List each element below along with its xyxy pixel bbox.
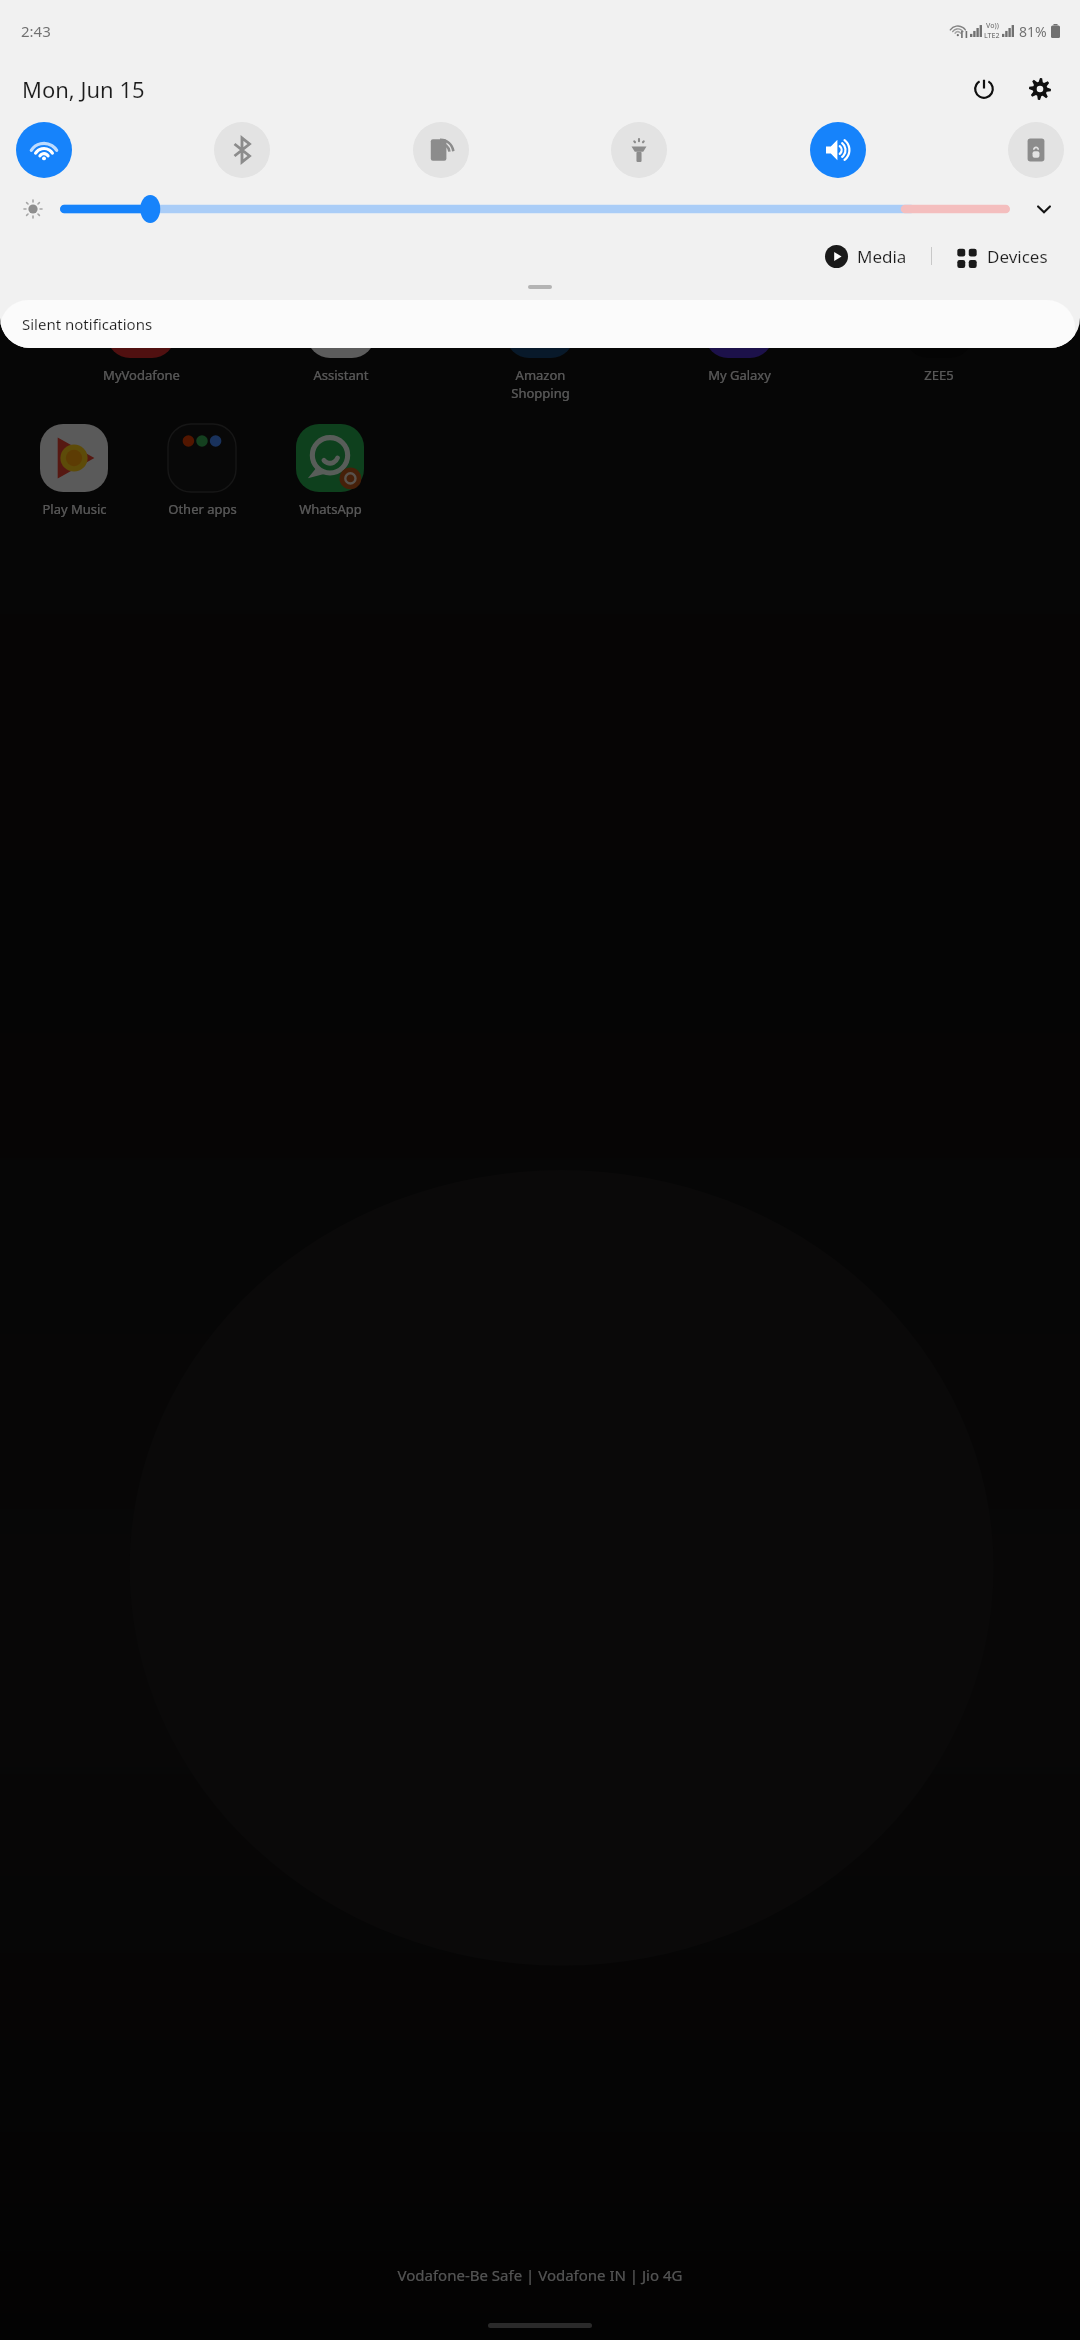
staticText: Vodafone-Be Safe | Vodafone IN | Jio 4G xyxy=(0,2265,1080,2285)
button[interactable]: Media xyxy=(819,242,913,271)
staticText: LTE2 xyxy=(984,31,1000,41)
staticText: 2:43 xyxy=(21,21,51,41)
button[interactable]: Flashlight xyxy=(611,122,667,178)
staticText: My Galaxy xyxy=(708,366,771,384)
staticText: Other apps xyxy=(168,500,237,518)
button[interactable]: Mobile data xyxy=(413,122,469,178)
staticText: Assistant xyxy=(313,366,369,384)
button[interactable]: Play Music xyxy=(10,424,138,518)
button[interactable]: Expand brightness settings xyxy=(1024,192,1064,226)
button[interactable]: Settings xyxy=(1018,67,1062,111)
staticText: Amazon Shopping xyxy=(511,366,570,402)
staticText: Vo)) xyxy=(986,21,999,31)
staticText: Silent notifications xyxy=(22,314,153,334)
staticText: Media xyxy=(857,245,907,268)
button[interactable]: My Galaxy xyxy=(675,290,803,384)
staticText: MyVodafone xyxy=(103,366,180,384)
staticText: Devices xyxy=(987,245,1048,268)
button[interactable]: WhatsApp xyxy=(266,424,394,518)
button[interactable]: MyVodafone xyxy=(77,290,205,384)
button[interactable]: Wi-Fi xyxy=(16,122,72,178)
staticText: Play Music xyxy=(42,500,107,518)
button[interactable]: Assistant xyxy=(277,290,405,384)
button[interactable]: Auto rotate lock xyxy=(1008,122,1064,178)
staticText: ZEE5 xyxy=(924,366,954,384)
button[interactable]: Amazon Shopping xyxy=(476,290,604,402)
button[interactable]: Devices xyxy=(950,242,1054,271)
staticText: 81% xyxy=(1019,22,1047,41)
staticText: Mon, Jun 15 xyxy=(22,74,145,104)
button[interactable]: Bluetooth xyxy=(214,122,270,178)
button[interactable]: Sound xyxy=(810,122,866,178)
button[interactable]: Power off xyxy=(962,67,1006,111)
button[interactable]: Other apps xyxy=(138,424,266,518)
button[interactable]: Silent notifications xyxy=(0,300,1075,348)
button[interactable]: ZEE5 xyxy=(875,290,1003,384)
staticText: WhatsApp xyxy=(299,500,362,518)
button[interactable]: Brightness xyxy=(60,194,1010,224)
